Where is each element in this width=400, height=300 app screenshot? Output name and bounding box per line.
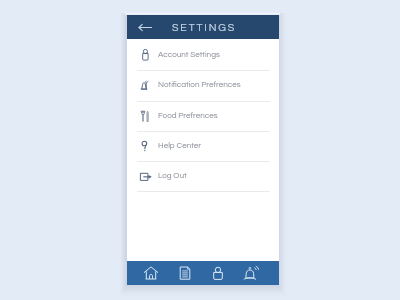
staticText: Log Out	[158, 171, 187, 179]
staticText: Notification Prefrences	[158, 80, 241, 88]
button[interactable]	[127, 162, 279, 191]
staticText: Food Prefrences	[158, 111, 218, 119]
button[interactable]	[127, 132, 279, 161]
button[interactable]: Documents	[174, 262, 196, 284]
button[interactable]	[127, 41, 279, 71]
staticText: Account Settings	[158, 50, 220, 58]
staticText: Help Center	[158, 141, 202, 149]
button[interactable]: Alerts	[240, 262, 262, 284]
button[interactable]: Home	[140, 262, 162, 284]
button[interactable]	[127, 101, 279, 131]
staticText: SETTINGS	[172, 22, 237, 33]
button[interactable]: Profile	[207, 262, 229, 284]
button[interactable]: Back	[138, 20, 152, 34]
button[interactable]	[127, 71, 279, 101]
